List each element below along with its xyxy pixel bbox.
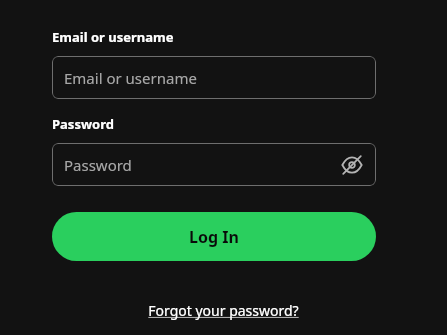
staticText: Password — [52, 115, 114, 133]
button[interactable]: Show password — [338, 151, 366, 179]
staticText: Forgot your password? — [148, 301, 299, 320]
button[interactable]: Forgot your password? — [144, 299, 303, 322]
button[interactable]: Email or username — [52, 56, 376, 99]
button[interactable]: Log In — [52, 212, 376, 261]
staticText: Password — [64, 155, 132, 175]
staticText: Log In — [189, 226, 239, 248]
button[interactable]: Password — [52, 143, 376, 186]
staticText: Email or username — [64, 68, 197, 88]
staticText: Email or username — [52, 28, 174, 46]
